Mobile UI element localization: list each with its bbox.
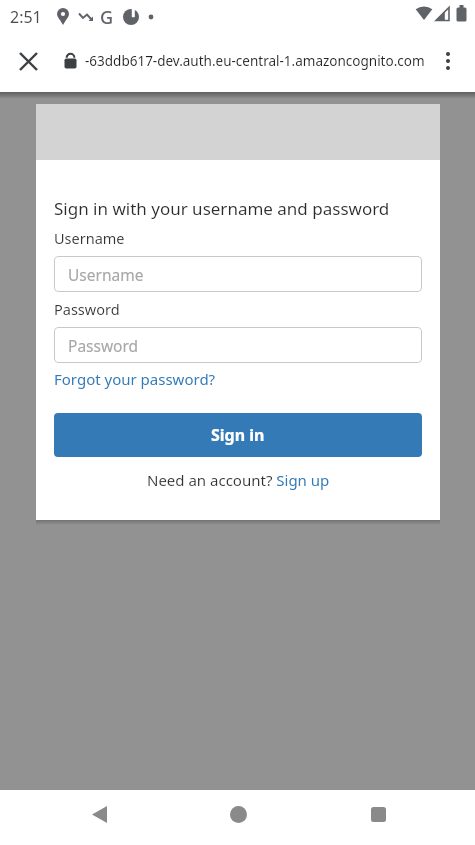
button[interactable] [358, 794, 398, 834]
button[interactable] [218, 794, 258, 834]
button[interactable]: Sign in [54, 413, 422, 457]
button[interactable]: Forgot your password? [54, 369, 216, 389]
staticText: Password [54, 299, 120, 319]
staticText: Password [68, 335, 139, 356]
staticText: Sign in with your username and password [54, 197, 390, 220]
staticText: G [100, 5, 114, 30]
button[interactable] [79, 794, 119, 834]
button[interactable]: Username [54, 256, 422, 292]
staticText: Sign in [211, 424, 265, 446]
staticText: 2:51 [10, 6, 42, 28]
button[interactable]: Password [54, 327, 422, 363]
staticText: -63ddb617-dev.auth.eu-central-1.amazonco… [85, 52, 425, 70]
staticText: Username [68, 264, 144, 285]
button[interactable] [433, 46, 463, 76]
staticText: Username [54, 228, 125, 248]
button[interactable]: Need an account? Sign up [147, 470, 330, 490]
button[interactable] [12, 45, 44, 77]
